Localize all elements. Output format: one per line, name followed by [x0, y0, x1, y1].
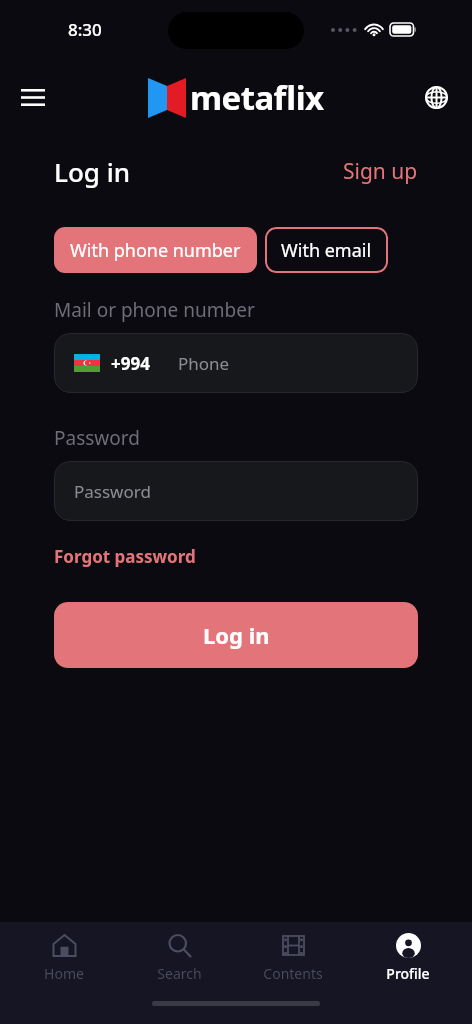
button[interactable]: Log in: [54, 602, 418, 668]
staticText: Password: [74, 480, 151, 503]
staticText: 8:30: [68, 18, 102, 41]
staticText: metaflix: [190, 75, 324, 120]
staticText: With email: [281, 238, 372, 263]
button[interactable]: Language: [416, 77, 456, 117]
staticText: Log in: [203, 620, 270, 650]
staticText: With phone number: [70, 238, 241, 263]
button[interactable]: Log in: [54, 154, 130, 189]
staticText: Search: [157, 964, 202, 983]
button[interactable]: Password: [54, 461, 418, 521]
button[interactable]: +994: [54, 333, 418, 393]
staticText: Phone: [178, 352, 230, 375]
staticText: +994: [111, 352, 150, 375]
button[interactable]: Sign up: [343, 157, 418, 186]
staticText: Password: [54, 425, 140, 451]
staticText: Profile: [386, 964, 430, 983]
staticText: Home: [44, 964, 84, 983]
button[interactable]: With phone number: [54, 227, 257, 273]
button[interactable]: Profile: [358, 929, 458, 987]
staticText: Contents: [263, 964, 323, 983]
button[interactable]: Forgot password: [54, 545, 196, 568]
button[interactable]: Menu: [12, 76, 54, 118]
button[interactable]: Home: [14, 929, 114, 987]
button[interactable]: Search: [129, 929, 229, 987]
button[interactable]: With email: [265, 227, 388, 273]
button[interactable]: Contents: [243, 929, 343, 987]
staticText: Mail or phone number: [54, 297, 255, 323]
